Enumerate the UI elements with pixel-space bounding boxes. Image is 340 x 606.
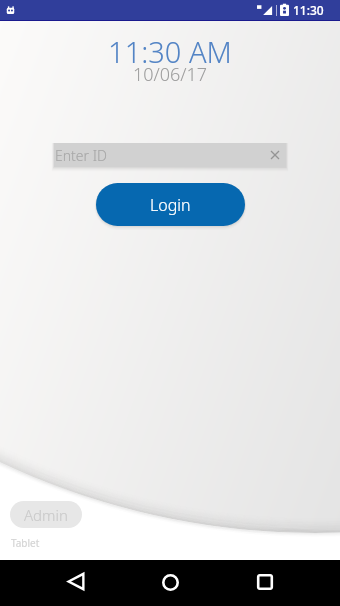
button[interactable]: Enter ID bbox=[54, 143, 286, 167]
staticText: Enter ID bbox=[55, 146, 108, 165]
staticText: Tablet bbox=[11, 536, 40, 550]
button[interactable]: Admin bbox=[10, 501, 82, 528]
button[interactable]: Login bbox=[96, 183, 245, 226]
staticText: 10/06/17 bbox=[0, 62, 340, 87]
button[interactable]: Back bbox=[53, 558, 99, 604]
staticText: Admin bbox=[24, 505, 68, 525]
other: Notification bbox=[5, 5, 16, 16]
staticText: 11:30 AM bbox=[0, 32, 340, 71]
button[interactable]: Recent apps bbox=[242, 559, 288, 605]
staticText: Login bbox=[150, 194, 191, 216]
button[interactable]: Clear text bbox=[265, 145, 285, 165]
button[interactable]: Home bbox=[147, 559, 193, 605]
staticText: 11:30 bbox=[293, 2, 324, 18]
